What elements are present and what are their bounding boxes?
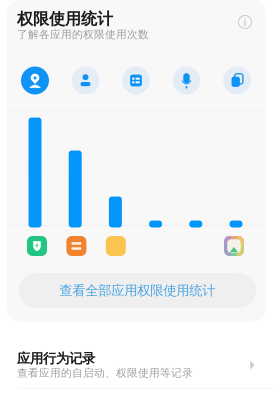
button[interactable]: Info bbox=[233, 10, 257, 34]
button[interactable]: Permission category bbox=[15, 63, 55, 97]
button[interactable]: Permission category bbox=[116, 63, 156, 97]
staticText: 了解各应用的权限使用次数 bbox=[17, 28, 149, 41]
button[interactable]: 应用行为记录 bbox=[0, 342, 273, 388]
staticText: 查看应用的自启动、权限使用等记录 bbox=[17, 366, 193, 379]
button[interactable]: Permission category bbox=[65, 63, 105, 97]
staticText: i bbox=[243, 15, 246, 29]
button[interactable]: 查看全部应用权限使用统计 bbox=[18, 273, 256, 308]
staticText: 查看全部应用权限使用统计 bbox=[59, 282, 215, 299]
button[interactable]: Permission category bbox=[217, 63, 257, 97]
button[interactable]: Permission category bbox=[166, 63, 206, 97]
staticText: 应用行为记录 bbox=[17, 350, 95, 367]
staticText: 权限使用统计 bbox=[17, 9, 113, 29]
